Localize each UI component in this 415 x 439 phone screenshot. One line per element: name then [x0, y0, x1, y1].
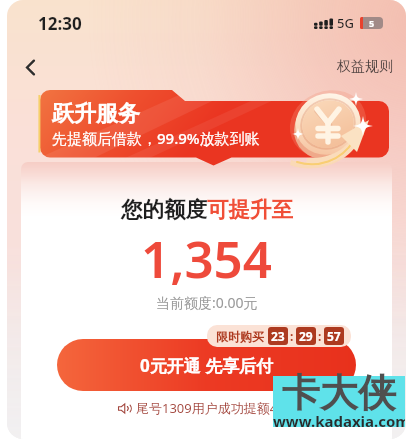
staticText: :: [318, 328, 322, 344]
button[interactable]: 0元开通 先享后付: [57, 339, 356, 391]
staticText: 23: [271, 328, 285, 344]
staticText: 5: [369, 17, 375, 29]
button[interactable]: 权益规则: [315, 50, 406, 80]
button[interactable]: 跃升服务: [7, 0, 406, 439]
staticText: 29: [299, 328, 313, 344]
staticText: 当前额度:0.00元: [156, 293, 258, 312]
staticText: 12:30: [38, 12, 82, 35]
staticText: www.kadaxia.com: [273, 411, 405, 431]
staticText: 1,354: [141, 223, 272, 292]
staticText: :: [290, 328, 294, 344]
staticText: 0元开通 先享后付: [140, 354, 274, 377]
staticText: 您的额度可提升至: [121, 196, 293, 223]
staticText: 57: [327, 328, 341, 344]
staticText: 限时购买: [216, 329, 264, 344]
staticText: 权益规则: [337, 58, 393, 76]
staticText: 尾号1309用户成功提额40...: [136, 399, 296, 417]
button[interactable]: Back: [13, 48, 47, 82]
staticText: 卡大侠: [282, 369, 396, 417]
staticText: 跃升服务: [52, 100, 140, 128]
staticText: 先提额后借款，99.9%放款到账: [52, 128, 260, 148]
staticText: 5G: [337, 14, 354, 32]
